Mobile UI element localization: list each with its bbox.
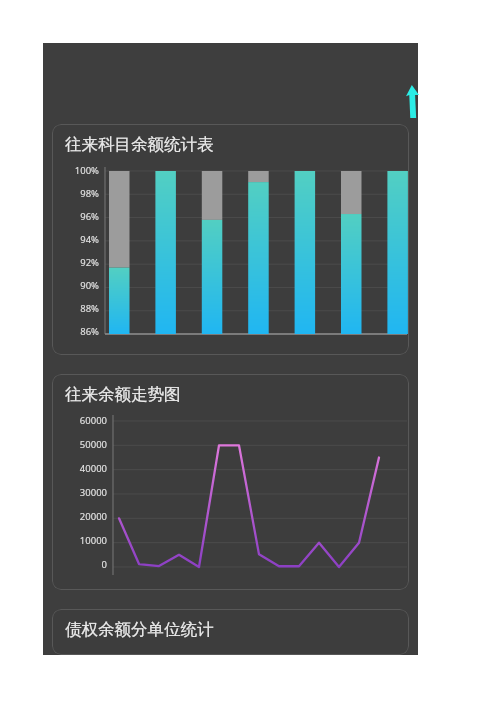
- staticText: 20000: [52, 510, 107, 523]
- staticText: 86%: [52, 325, 99, 338]
- staticText: 96%: [52, 210, 99, 223]
- button[interactable]: 往来余额走势图: [52, 374, 409, 590]
- staticText: 往来余额走势图: [65, 384, 181, 405]
- staticText: 90%: [52, 279, 99, 292]
- button[interactable]: 往来科目余额统计表: [52, 124, 409, 355]
- button[interactable]: Trend indicator: [406, 85, 419, 118]
- staticText: 60000: [52, 414, 107, 427]
- staticText: 30000: [52, 486, 107, 499]
- staticText: 10000: [52, 534, 107, 547]
- staticText: 40000: [52, 462, 107, 475]
- staticText: 50000: [52, 438, 107, 451]
- button[interactable]: 债权余额分单位统计: [52, 609, 409, 655]
- staticText: 94%: [52, 233, 99, 246]
- staticText: 往来科目余额统计表: [65, 134, 214, 155]
- staticText: 债权余额分单位统计: [65, 619, 214, 640]
- staticText: 100%: [52, 164, 99, 177]
- staticText: 88%: [52, 302, 99, 315]
- staticText: 92%: [52, 256, 99, 269]
- staticText: 98%: [52, 187, 99, 200]
- staticText: 0: [52, 558, 107, 571]
